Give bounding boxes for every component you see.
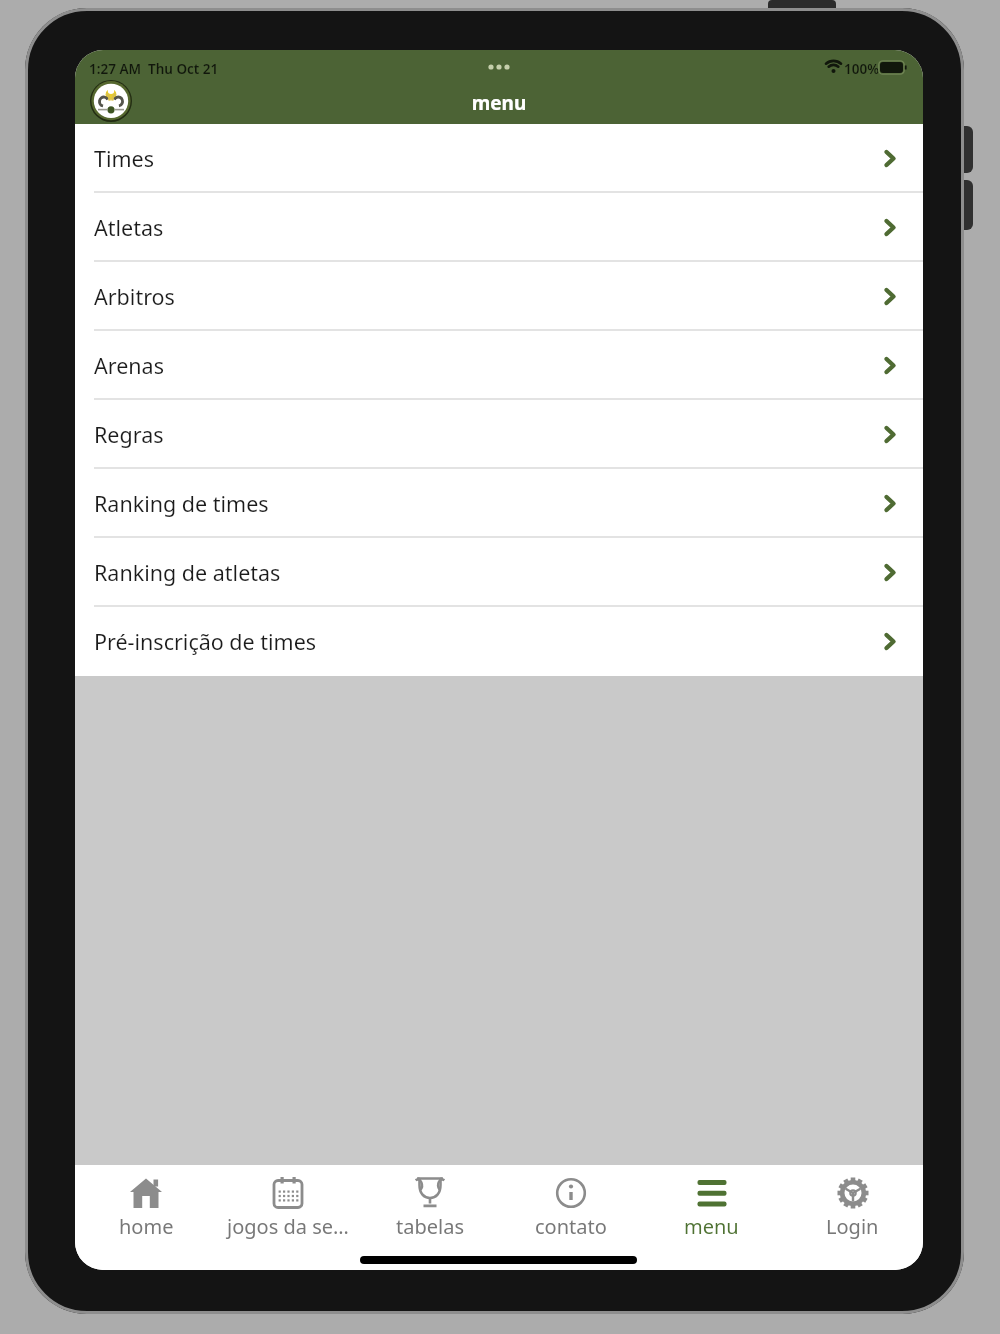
staticText: 1:27 AM Thu Oct 21: [89, 60, 219, 78]
staticText: Regras: [94, 420, 164, 449]
staticText: Ranking de times: [94, 489, 269, 518]
staticText: Ranking de atletas: [94, 558, 281, 587]
staticText: tabelas: [396, 1213, 464, 1240]
button[interactable]: Pré-inscrição de times: [75, 607, 923, 676]
staticText: Pré-inscrição de times: [94, 627, 317, 656]
button[interactable]: Atletas: [75, 193, 923, 262]
staticText: Arbitros: [94, 282, 175, 311]
staticText: home: [119, 1213, 174, 1240]
staticText: Times: [94, 144, 155, 173]
staticText: menu: [684, 1213, 739, 1240]
button[interactable]: Ranking de atletas: [75, 538, 923, 607]
button[interactable]: menu: [641, 1165, 782, 1270]
button[interactable]: jogos da se…: [217, 1165, 359, 1270]
button[interactable]: Regras: [75, 400, 923, 469]
button[interactable]: home: [75, 1165, 217, 1270]
button[interactable]: tabelas: [359, 1165, 500, 1270]
staticText: Login: [826, 1213, 879, 1240]
button[interactable]: [90, 80, 132, 122]
staticText: menu: [75, 90, 923, 116]
staticText: Atletas: [94, 213, 164, 242]
staticText: contato: [535, 1213, 607, 1240]
button[interactable]: Login: [782, 1165, 923, 1270]
button[interactable]: Arbitros: [75, 262, 923, 331]
staticText: Arenas: [94, 351, 164, 380]
button[interactable]: contato: [500, 1165, 641, 1270]
button[interactable]: Ranking de times: [75, 469, 923, 538]
staticText: jogos da se…: [227, 1213, 349, 1240]
staticText: 100%: [844, 60, 879, 78]
button[interactable]: Arenas: [75, 331, 923, 400]
button[interactable]: Times: [75, 124, 923, 193]
